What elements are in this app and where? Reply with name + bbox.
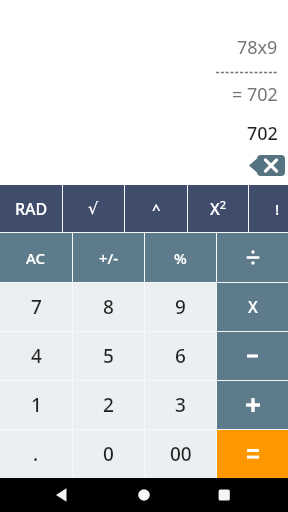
- button[interactable]: X2: [188, 185, 248, 232]
- staticText: 4: [31, 343, 42, 369]
- button[interactable]: [96, 478, 192, 512]
- staticText: = 702: [232, 82, 278, 107]
- staticText: 0: [103, 441, 114, 467]
- button[interactable]: 00: [145, 430, 216, 478]
- staticText: 78x9: [237, 35, 278, 60]
- staticText: 8: [103, 294, 114, 320]
- staticText: 2: [103, 392, 114, 418]
- staticText: X: [248, 296, 258, 318]
- button[interactable]: √: [63, 185, 124, 232]
- button[interactable]: RAD: [0, 185, 62, 232]
- button[interactable]: 5: [73, 332, 144, 380]
- button[interactable]: .: [0, 430, 72, 478]
- button[interactable]: 0: [73, 430, 144, 478]
- button[interactable]: 2: [73, 381, 144, 429]
- button[interactable]: 6: [145, 332, 216, 380]
- button[interactable]: !: [249, 185, 288, 232]
- staticText: %: [174, 248, 187, 268]
- staticText: !: [275, 199, 280, 219]
- staticText: ^: [152, 199, 161, 219]
- staticText: X2: [210, 197, 227, 220]
- button[interactable]: 3: [145, 381, 216, 429]
- button[interactable]: [0, 478, 96, 512]
- button[interactable]: X: [217, 283, 288, 331]
- staticText: RAD: [15, 198, 48, 220]
- staticText: 702: [247, 121, 278, 146]
- staticText: √: [88, 199, 99, 218]
- staticText: .: [33, 441, 39, 467]
- staticText: 00: [170, 441, 192, 467]
- button[interactable]: 9: [145, 283, 216, 331]
- button[interactable]: 4: [0, 332, 72, 380]
- staticText: 9: [175, 294, 186, 320]
- button[interactable]: [192, 478, 288, 512]
- button[interactable]: +/-: [73, 233, 144, 282]
- button[interactable]: 7: [0, 283, 72, 331]
- staticText: +/-: [99, 248, 119, 268]
- staticText: 5: [103, 343, 114, 369]
- button[interactable]: 1: [0, 381, 72, 429]
- button[interactable]: [217, 381, 288, 429]
- button[interactable]: 8: [73, 283, 144, 331]
- button[interactable]: [217, 332, 288, 380]
- staticText: 7: [31, 294, 42, 320]
- button[interactable]: [217, 233, 288, 282]
- staticText: 6: [175, 343, 186, 369]
- staticText: AC: [26, 248, 46, 268]
- button[interactable]: ^: [125, 185, 187, 232]
- button[interactable]: AC: [0, 233, 72, 282]
- button[interactable]: %: [145, 233, 216, 282]
- staticText: 3: [175, 392, 186, 418]
- button[interactable]: [249, 155, 285, 176]
- button[interactable]: [217, 430, 288, 478]
- staticText: 1: [31, 392, 42, 418]
